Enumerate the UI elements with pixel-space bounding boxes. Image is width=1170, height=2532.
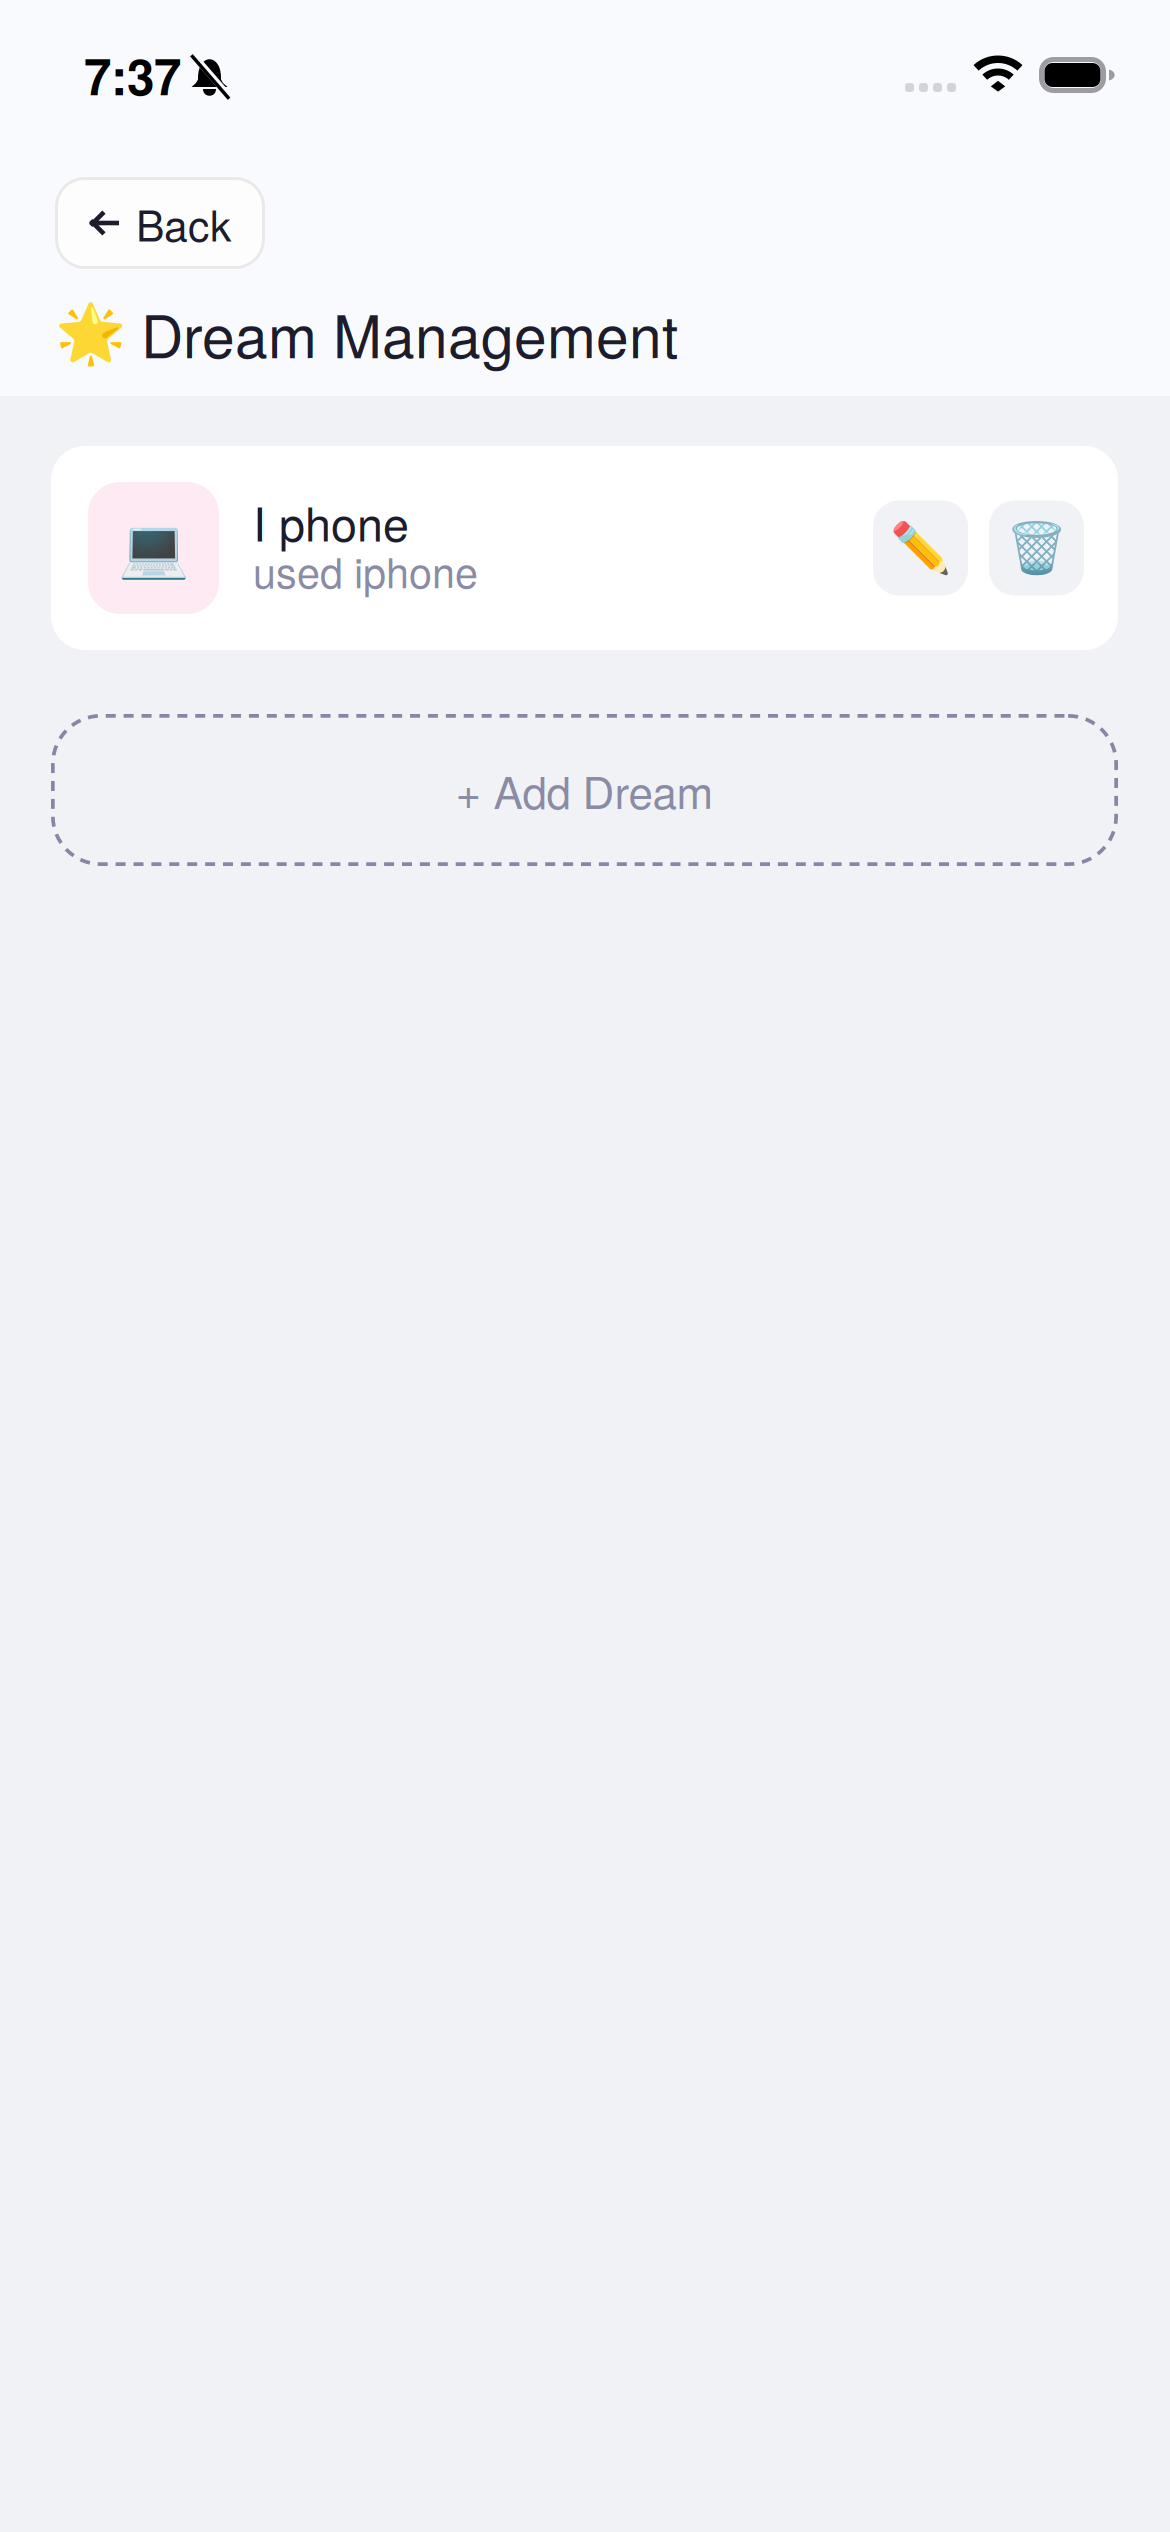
button[interactable]: + Add Dream — [51, 714, 1118, 866]
button[interactable]: Delete dream — [989, 500, 1084, 595]
staticText: 💻 — [118, 514, 189, 582]
staticText: used iphone — [253, 541, 478, 600]
staticText: Back — [136, 192, 231, 254]
staticText: + Add Dream — [455, 758, 713, 821]
staticText: 🌟 — [55, 299, 126, 367]
staticText: I phone — [253, 488, 409, 555]
staticText: ✏️ — [890, 519, 951, 577]
button[interactable]: Edit dream — [873, 500, 968, 595]
staticText: 7:37 — [84, 40, 181, 110]
staticText: 🗑️ — [1006, 519, 1067, 577]
button[interactable]: Back — [55, 177, 265, 269]
staticText: Dream Management — [141, 291, 678, 375]
